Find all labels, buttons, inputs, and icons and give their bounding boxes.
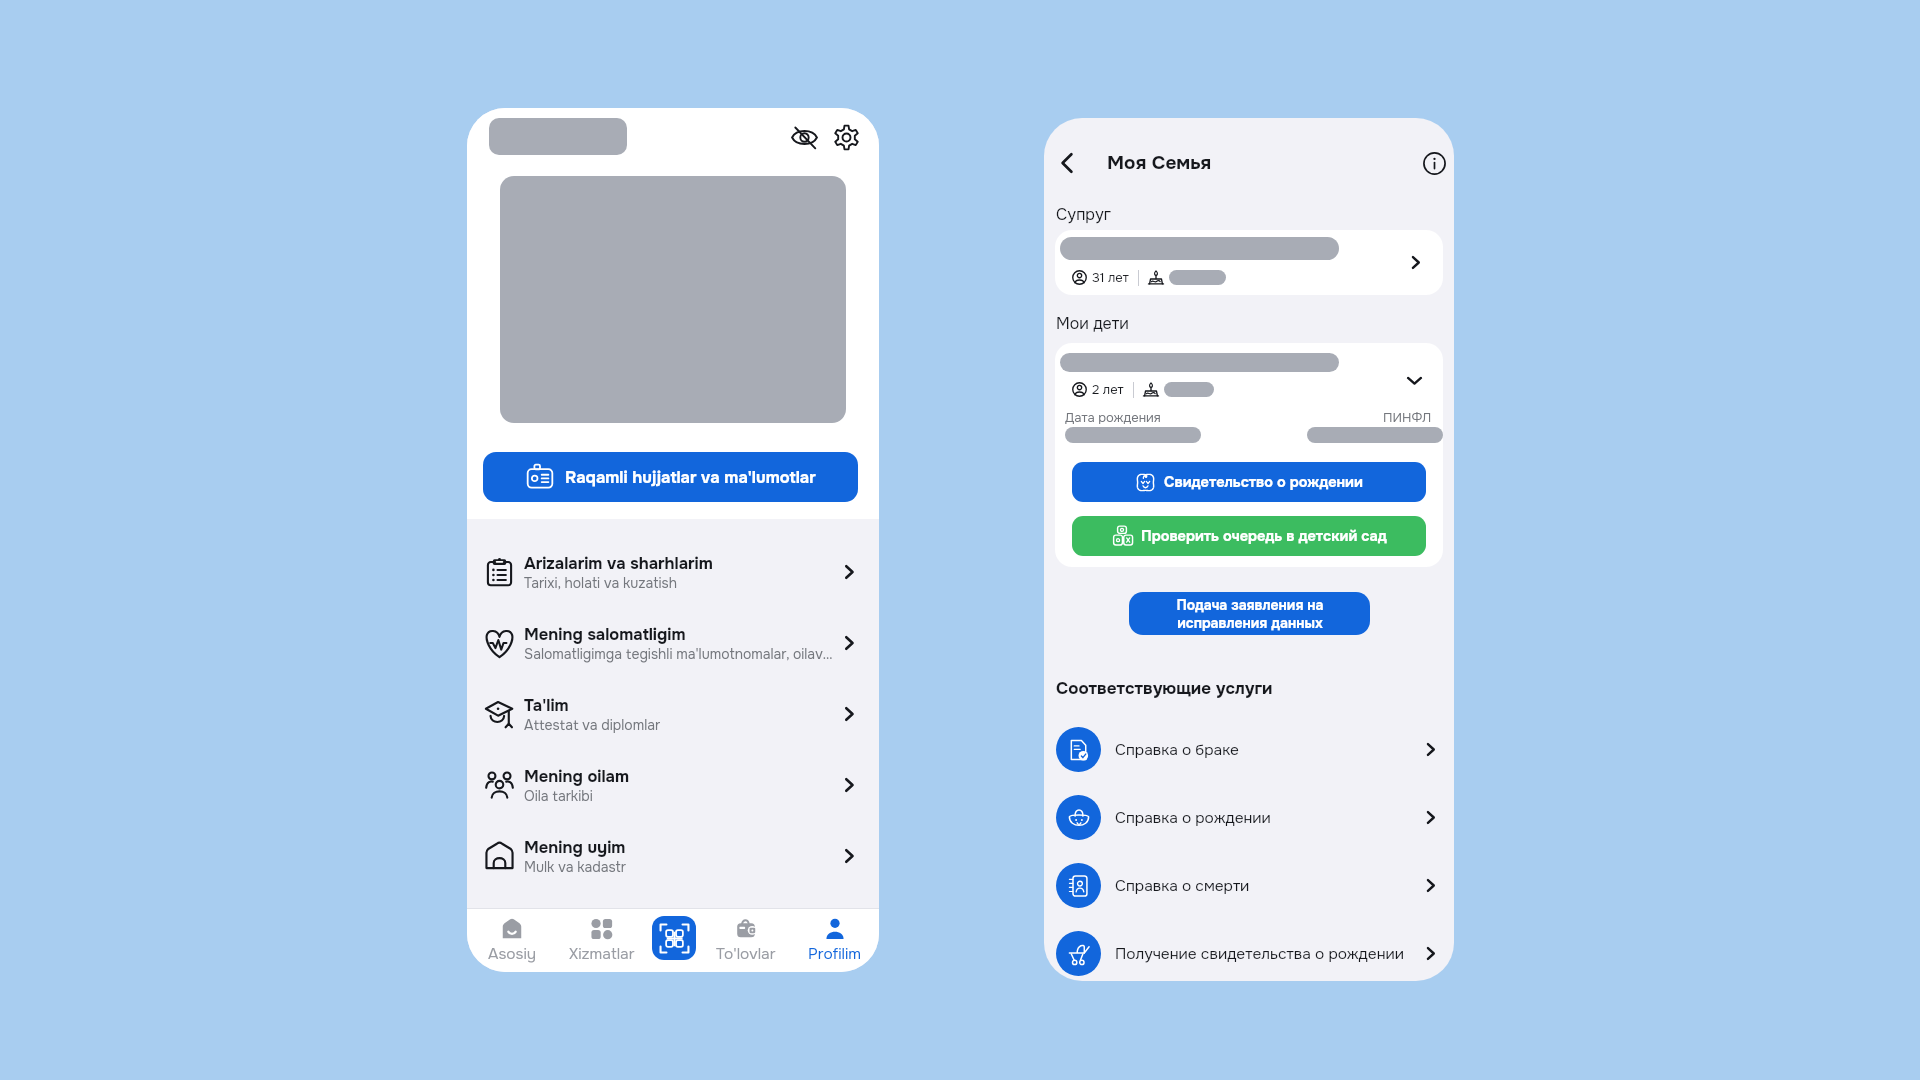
staticText: Attestat va diplomlar: [524, 716, 661, 734]
staticText: Справка о браке: [1115, 740, 1423, 760]
staticText: Проверить очередь в детский сад: [1141, 527, 1387, 545]
staticText: To'lovlar: [716, 944, 776, 964]
staticText: Дата рождения: [1065, 409, 1161, 426]
staticText: Salomatligimga tegishli ma'lumotnomalar,…: [524, 645, 833, 663]
button[interactable]: Mening oilam: [467, 760, 879, 810]
button[interactable]: Mening uyim: [467, 831, 879, 881]
staticText: 2 лет: [1092, 381, 1124, 398]
staticText: Подача заявления на исправления данных: [1176, 596, 1324, 632]
staticText: 31 лет: [1092, 269, 1129, 286]
button[interactable]: Back: [1052, 148, 1082, 178]
button[interactable]: Scan QR code: [652, 916, 696, 960]
button[interactable]: Свидетельство о рождении: [1072, 462, 1426, 502]
staticText: Моя Семья: [1107, 151, 1212, 175]
staticText: Xizmatlar: [569, 944, 635, 964]
button[interactable]: Arizalarim va sharhlarim: [467, 547, 879, 597]
button[interactable]: Справка о смерти: [1044, 863, 1454, 908]
staticText: Свидетельство о рождении: [1164, 473, 1363, 491]
button[interactable]: Справка о браке: [1044, 727, 1454, 772]
staticText: Profilim: [808, 944, 862, 964]
staticText: Соответствующие услуги: [1056, 678, 1273, 700]
staticText: ПИНФЛ: [1383, 409, 1432, 426]
button[interactable]: Ta'lim: [467, 689, 879, 739]
staticText: Мои дети: [1056, 313, 1129, 333]
button[interactable]: Справка о рождении: [1044, 795, 1454, 840]
staticText: Mulk va kadastr: [524, 858, 626, 876]
staticText: Супруг: [1056, 204, 1111, 224]
staticText: Mening uyim: [524, 837, 626, 858]
staticText: Raqamli hujjatlar va ma'lumotlar: [565, 467, 816, 488]
button[interactable]: Подача заявления на исправления данных: [1129, 592, 1370, 635]
staticText: Asosiy: [488, 944, 537, 964]
button[interactable]: Settings: [831, 122, 861, 152]
staticText: Mening salomatligim: [524, 624, 686, 645]
staticText: Oila tarkibi: [524, 787, 593, 805]
button[interactable]: 31 лет: [1055, 230, 1443, 295]
staticText: Получение свидетельства о рождении: [1115, 944, 1423, 964]
button[interactable]: Asosiy: [467, 909, 557, 972]
staticText: Ta'lim: [524, 695, 569, 716]
staticText: Справка о смерти: [1115, 876, 1423, 896]
button[interactable]: Проверить очередь в детский сад: [1072, 516, 1426, 556]
staticText: Arizalarim va sharhlarim: [524, 553, 713, 574]
staticText: Tarixi, holati va kuzatish: [524, 574, 678, 592]
button[interactable]: To'lovlar: [701, 909, 790, 972]
button[interactable]: Expand: [1400, 366, 1428, 394]
staticText: Справка о рождении: [1115, 808, 1423, 828]
button[interactable]: Mening salomatligim: [467, 618, 879, 668]
button[interactable]: Получение свидетельства о рождении: [1044, 931, 1454, 976]
button[interactable]: Profilim: [790, 909, 879, 972]
button[interactable]: Information: [1419, 148, 1449, 178]
button[interactable]: Raqamli hujjatlar va ma'lumotlar: [483, 452, 858, 502]
staticText: Mening oilam: [524, 766, 629, 787]
button[interactable]: Xizmatlar: [557, 909, 646, 972]
button[interactable]: Hide balance: [789, 122, 819, 152]
